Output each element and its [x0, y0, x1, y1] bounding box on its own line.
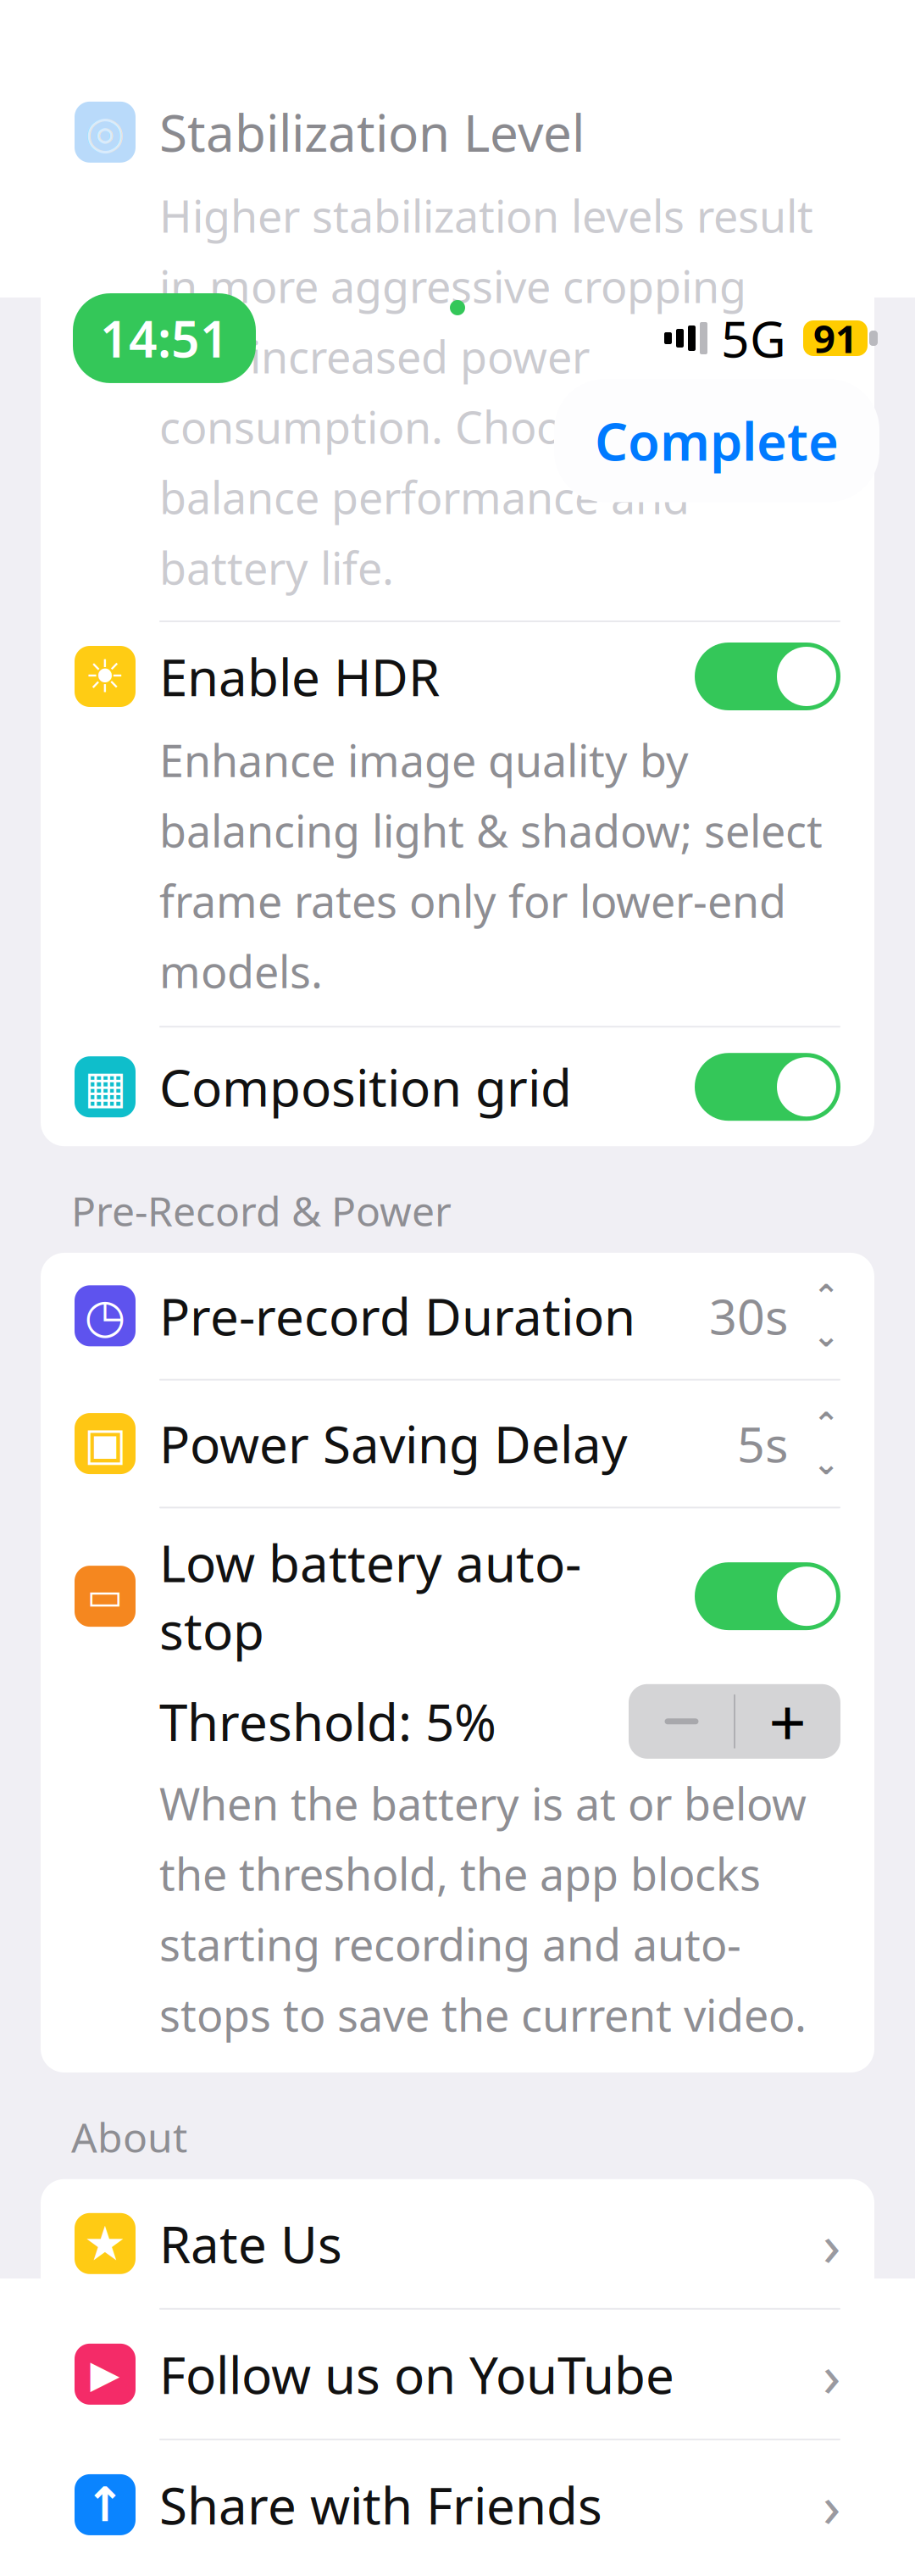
button[interactable]: ▭	[41, 1508, 874, 1684]
staticText: When the battery is at or below the thre…	[159, 1774, 807, 2044]
staticText: ›	[823, 2466, 840, 2544]
staticText: ›	[823, 2205, 840, 2283]
staticText: ↑	[85, 2478, 125, 2532]
button[interactable]: ▦	[41, 1033, 874, 1141]
button[interactable]: ▣	[41, 1381, 874, 1507]
staticText: Pre-record Duration	[159, 1282, 635, 1350]
staticText: ▣	[84, 1418, 126, 1469]
button[interactable]: ◎	[41, 81, 874, 620]
staticText: ★	[84, 2217, 126, 2271]
staticText: Composition grid	[159, 1053, 572, 1121]
staticText: Rate Us	[159, 2210, 342, 2277]
staticText: ⌄	[813, 1445, 839, 1481]
staticText: Higher stabilization levels result in mo…	[159, 186, 813, 597]
staticText: ☀	[85, 651, 125, 702]
staticText: ◷	[84, 1289, 126, 1343]
staticText: 5G	[721, 305, 786, 371]
staticText: ▭	[87, 1574, 123, 1618]
staticText: ▶	[90, 2352, 120, 2396]
staticText: Share with Friends	[159, 2471, 602, 2539]
staticText: +	[769, 1678, 806, 1765]
staticText: ◎	[85, 106, 125, 158]
staticText: Enable HDR	[159, 643, 440, 710]
button[interactable]: ★	[41, 2179, 874, 2308]
staticText: ⌃	[813, 1406, 839, 1442]
staticText: ›	[823, 2335, 840, 2413]
staticText: 91	[813, 313, 857, 364]
staticText: Power Saving Delay	[159, 1410, 628, 1477]
button[interactable]: ◷	[41, 1253, 874, 1379]
button[interactable]: Decrease threshold	[629, 1684, 734, 1759]
button[interactable]: Toggle	[695, 1562, 840, 1630]
staticText: Pre-Record & Power	[71, 1183, 452, 1237]
button[interactable]: Toggle	[695, 643, 840, 710]
button[interactable]: Toggle	[695, 1053, 840, 1121]
button[interactable]: ☀	[41, 622, 874, 731]
button[interactable]: ↑	[41, 2440, 874, 2569]
staticText: ▦	[84, 1061, 126, 1112]
button[interactable]: ▶	[41, 2310, 874, 2439]
staticText: ⌄	[813, 1317, 839, 1353]
staticText: 14:51	[100, 305, 229, 371]
staticText: Complete	[595, 406, 839, 475]
staticText: 5s	[737, 1411, 788, 1476]
button[interactable]: Increase threshold	[735, 1684, 840, 1759]
staticText: ⌃	[813, 1278, 839, 1314]
staticText: Enhance image quality by balancing light…	[159, 731, 823, 1000]
button[interactable]: Complete	[554, 379, 879, 502]
staticText: About	[71, 2110, 187, 2164]
staticText: Threshold: 5%	[159, 1688, 496, 1755]
staticText: Follow us on YouTube	[159, 2340, 674, 2408]
staticText: Stabilization Level	[159, 98, 585, 166]
staticText: 30s	[709, 1284, 788, 1348]
staticText: Low battery auto-stop	[159, 1529, 581, 1664]
